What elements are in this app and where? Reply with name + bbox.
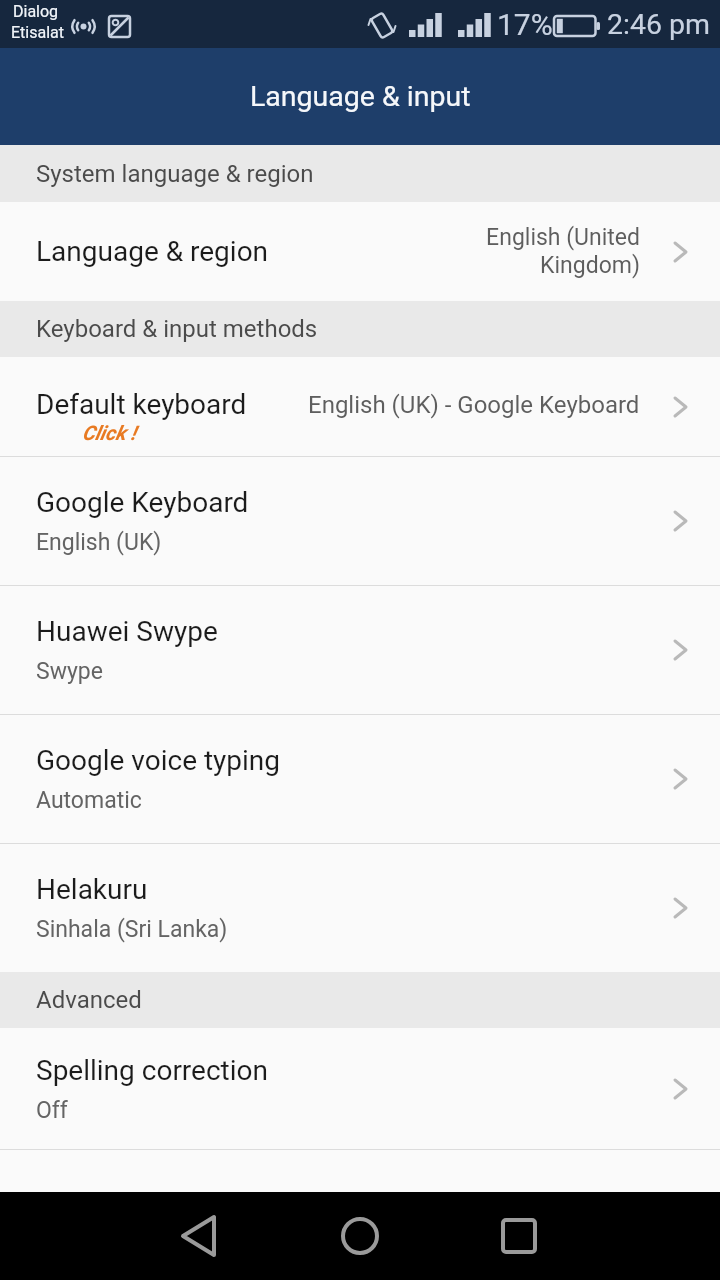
button[interactable]: Language & region xyxy=(0,202,720,301)
staticText: Helakuru xyxy=(36,873,148,906)
staticText: Automatic xyxy=(36,787,142,814)
staticText: Click ! xyxy=(82,421,136,444)
staticText: Sinhala (Sri Lanka) xyxy=(36,916,228,943)
staticText: Spelling correction xyxy=(36,1054,268,1087)
staticText: Swype xyxy=(36,658,103,685)
button[interactable]: Google Keyboard xyxy=(0,457,720,585)
button[interactable]: Huawei Swype xyxy=(0,586,720,714)
staticText: Language & region xyxy=(36,235,269,268)
staticText: English (United Kingdom) xyxy=(486,224,640,279)
staticText: 2:46 pm xyxy=(607,8,711,41)
button[interactable]: Helakuru xyxy=(0,844,720,972)
staticText: 17% xyxy=(497,7,553,42)
staticText: Huawei Swype xyxy=(36,615,218,648)
staticText: Off xyxy=(36,1097,68,1124)
staticText: Advanced xyxy=(36,986,142,1014)
staticText: Google voice typing xyxy=(36,744,281,777)
staticText: Etisalat xyxy=(11,23,65,42)
button[interactable]: Google voice typing xyxy=(0,715,720,843)
staticText: English (UK) - Google Keyboard xyxy=(308,391,640,419)
button[interactable] xyxy=(487,1204,551,1268)
staticText: System language & region xyxy=(36,160,314,188)
staticText: Google Keyboard xyxy=(36,486,249,519)
staticText: Keyboard & input methods xyxy=(36,315,318,343)
button[interactable] xyxy=(170,1204,234,1268)
staticText: Default keyboard xyxy=(36,388,247,421)
button[interactable] xyxy=(328,1204,392,1268)
staticText: Language & input xyxy=(250,80,471,113)
staticText: English (UK) xyxy=(36,529,162,556)
staticText: Dialog xyxy=(13,2,59,21)
button[interactable]: Spelling correction xyxy=(0,1028,720,1149)
button[interactable]: Default keyboard xyxy=(0,357,720,456)
